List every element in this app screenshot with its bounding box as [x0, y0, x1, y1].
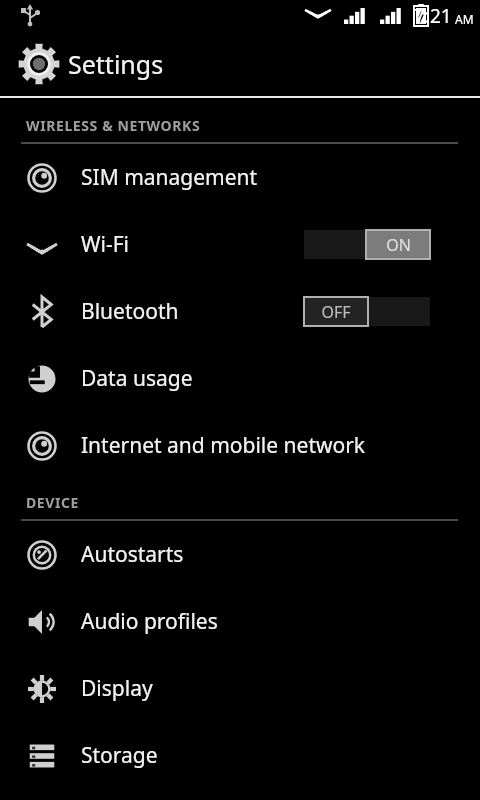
staticText: SIM management — [81, 163, 258, 192]
staticText: Storage — [81, 741, 158, 770]
staticText: Display — [81, 674, 153, 703]
button[interactable]: Display — [0, 655, 480, 722]
staticText: DEVICE — [26, 493, 80, 512]
button[interactable]: Autostarts — [0, 521, 480, 588]
other: Settings icon — [16, 41, 62, 87]
button[interactable]: Data usage — [0, 345, 480, 412]
button[interactable]: Bluetooth — [0, 278, 480, 345]
staticText: 7:21 — [414, 3, 452, 29]
button[interactable]: Storage — [0, 722, 480, 789]
button[interactable]: Audio profiles — [0, 588, 480, 655]
staticText: Wi-Fi — [81, 230, 130, 259]
button[interactable]: Wi-Fi — [0, 211, 480, 278]
staticText: Bluetooth — [81, 297, 179, 326]
button[interactable]: ON — [304, 230, 430, 259]
staticText: Data usage — [81, 364, 193, 393]
staticText: Internet and mobile network — [81, 431, 366, 460]
staticText: Audio profiles — [81, 607, 218, 636]
staticText: OFF — [321, 301, 351, 323]
staticText: Settings — [68, 47, 164, 81]
staticText: WIRELESS & NETWORKS — [26, 116, 201, 135]
staticText: AM — [455, 11, 474, 27]
button[interactable]: Internet and mobile network — [0, 412, 480, 479]
button[interactable]: OFF — [304, 297, 430, 326]
staticText: ON — [386, 234, 411, 256]
button[interactable]: SIM management — [0, 144, 480, 211]
staticText: Autostarts — [81, 540, 184, 569]
